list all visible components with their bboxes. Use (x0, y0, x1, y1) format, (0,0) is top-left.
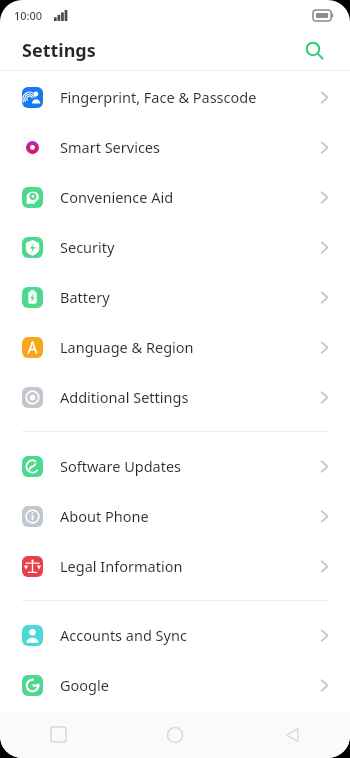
staticText: Language & Region (60, 337, 320, 357)
button[interactable]: Back (233, 711, 350, 758)
button[interactable]: Legal Information (0, 541, 350, 591)
staticText: Accounts and Sync (60, 625, 320, 645)
button[interactable]: Search (299, 35, 329, 65)
staticText: About Phone (60, 506, 320, 526)
staticText: Settings (22, 38, 96, 63)
staticText: Additional Settings (60, 387, 320, 407)
button[interactable]: Google (0, 660, 350, 710)
staticText: Google (60, 675, 320, 695)
staticText: Smart Services (60, 137, 320, 157)
button[interactable]: Convenience Aid (0, 172, 350, 222)
button[interactable]: Accounts and Sync (0, 610, 350, 660)
button[interactable]: Additional Settings (0, 372, 350, 422)
button[interactable]: Home (116, 711, 233, 758)
button[interactable]: Recent apps (0, 711, 116, 758)
button[interactable]: Fingerprint, Face & Passcode (0, 72, 350, 122)
staticText: 10:00 (14, 8, 43, 23)
button[interactable]: Smart Services (0, 122, 350, 172)
staticText: Legal Information (60, 556, 320, 576)
staticText: Security (60, 237, 320, 257)
button[interactable]: Security (0, 222, 350, 272)
staticText: Convenience Aid (60, 187, 320, 207)
staticText: Software Updates (60, 456, 320, 476)
staticText: Fingerprint, Face & Passcode (60, 87, 320, 107)
staticText: Battery (60, 287, 320, 307)
button[interactable]: Software Updates (0, 441, 350, 491)
button[interactable]: Language & Region (0, 322, 350, 372)
button[interactable]: About Phone (0, 491, 350, 541)
button[interactable]: Battery (0, 272, 350, 322)
